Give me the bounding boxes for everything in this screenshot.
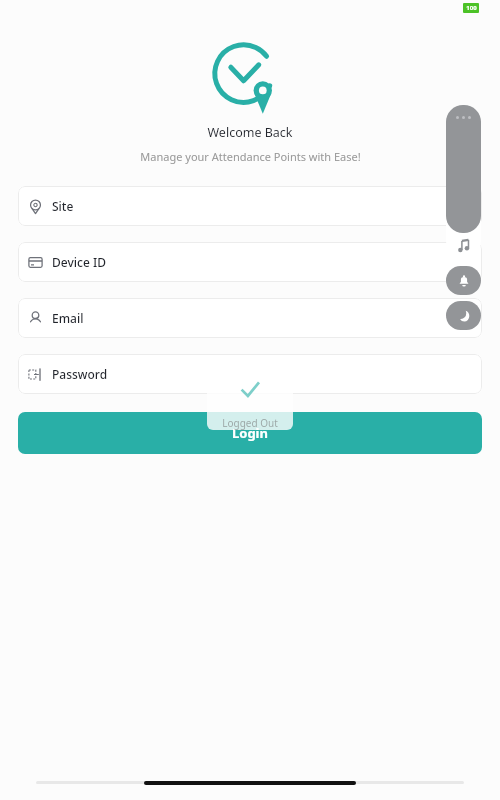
staticText: Device ID: [52, 254, 106, 270]
button[interactable]: Music: [446, 233, 481, 258]
button[interactable]: Site: [18, 186, 482, 226]
button[interactable]: Email: [18, 298, 482, 338]
button[interactable]: Notifications: [446, 266, 481, 295]
button[interactable]: Password: [18, 354, 482, 394]
staticText: Email: [52, 310, 84, 326]
button[interactable]: Device ID: [18, 242, 482, 282]
staticText: Site: [52, 198, 74, 214]
staticText: Manage your Attendance Points with Ease!: [140, 149, 361, 164]
staticText: Logged Out: [222, 416, 278, 430]
button[interactable]: Do not disturb: [446, 301, 481, 330]
staticText: Login: [232, 424, 268, 442]
staticText: Password: [52, 366, 108, 382]
button[interactable]: More options: [446, 105, 481, 233]
button[interactable]: Login: [18, 412, 482, 454]
staticText: Welcome Back: [207, 124, 293, 141]
staticText: 100: [466, 4, 477, 12]
